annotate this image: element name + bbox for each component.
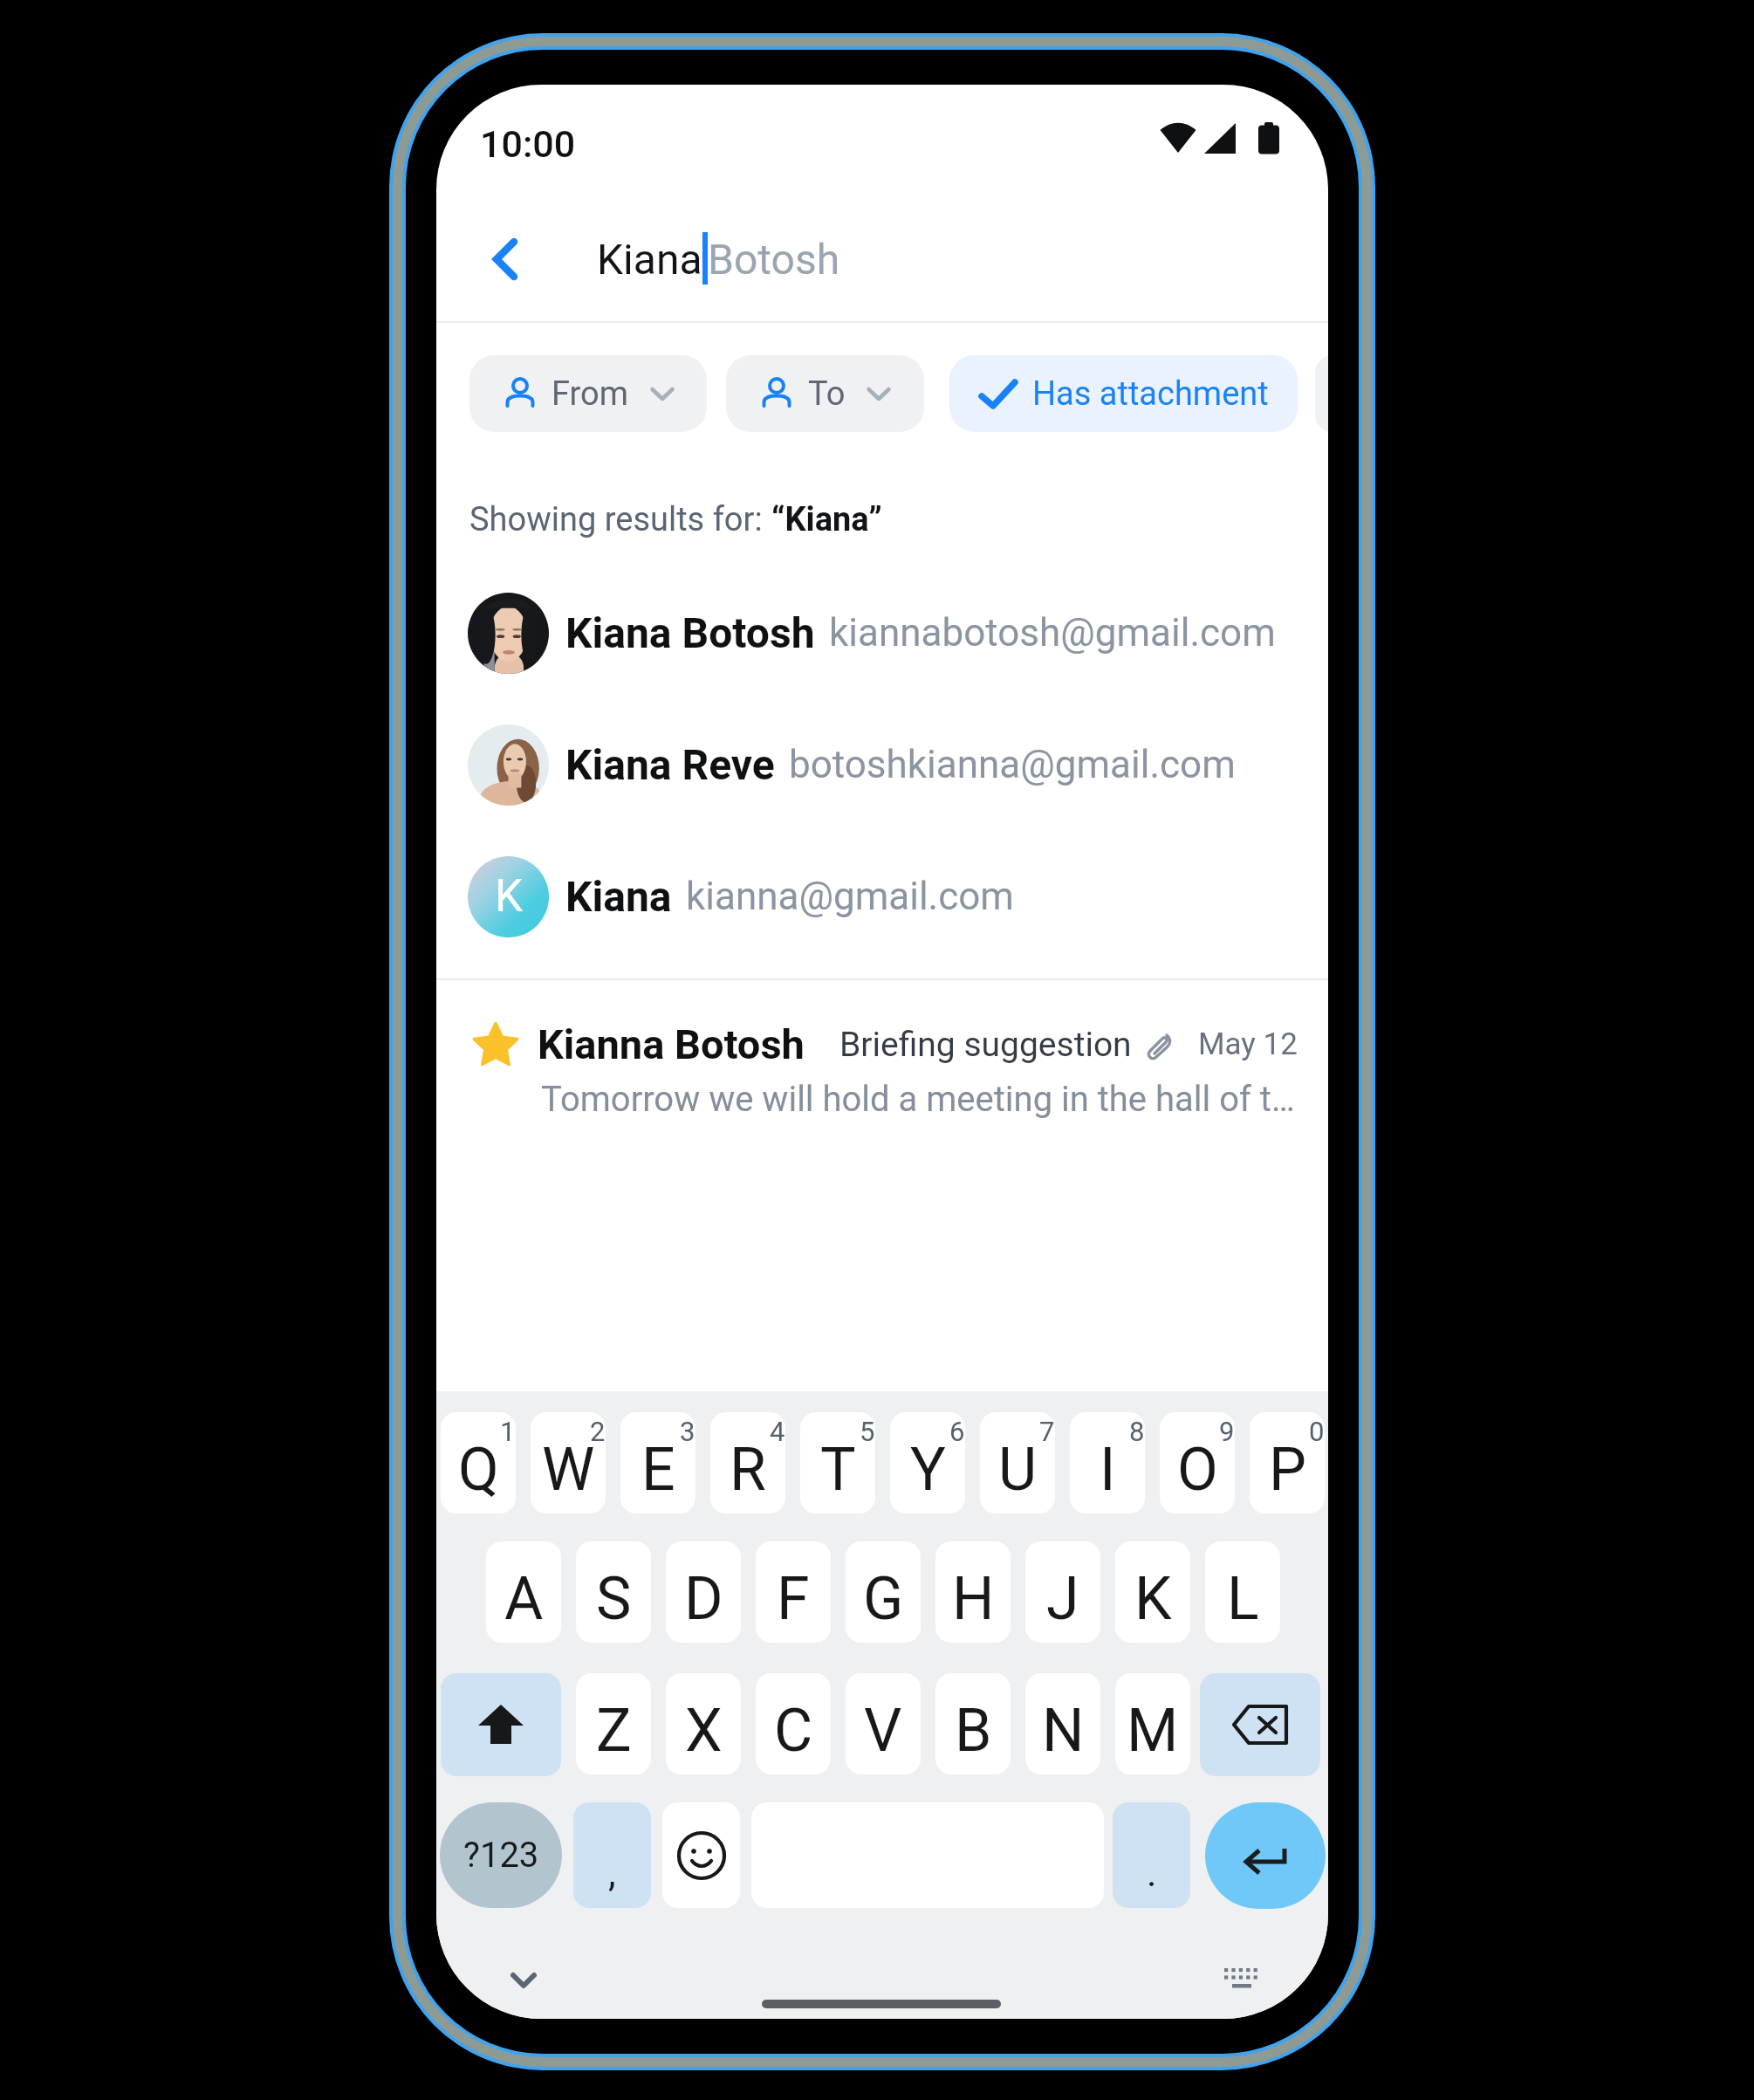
button[interactable]: Backspace	[1200, 1673, 1320, 1776]
button[interactable]: Kianna Botosh	[436, 1020, 1328, 1120]
button[interactable]: Z	[576, 1673, 651, 1774]
staticText: Y	[910, 1435, 946, 1505]
staticText: 4	[770, 1416, 785, 1447]
button[interactable]: I	[1070, 1412, 1145, 1513]
button[interactable]: Back	[469, 223, 542, 296]
staticText: S	[596, 1564, 632, 1634]
button[interactable]: Has attachment	[949, 355, 1298, 432]
staticText: 8	[1129, 1416, 1145, 1447]
staticText: 5	[860, 1416, 875, 1447]
button[interactable]: Emoji	[662, 1802, 740, 1908]
staticText: U	[998, 1435, 1038, 1505]
button[interactable]: B	[935, 1673, 1011, 1774]
staticText: C	[774, 1696, 813, 1766]
staticText: Botosh	[708, 235, 840, 284]
button[interactable]: From	[469, 355, 707, 432]
button[interactable]: Hide keyboard	[496, 1952, 552, 2008]
button[interactable]: ?123	[440, 1802, 562, 1908]
staticText: R	[730, 1435, 766, 1505]
staticText: Q	[458, 1435, 499, 1505]
button[interactable]: U	[980, 1412, 1055, 1513]
button[interactable]: Y	[890, 1412, 965, 1513]
staticText: M	[1127, 1696, 1179, 1766]
staticText: G	[863, 1564, 904, 1634]
staticText: P	[1269, 1435, 1306, 1505]
button[interactable]: O	[1160, 1412, 1235, 1513]
staticText: 3	[680, 1416, 695, 1447]
staticText: F	[777, 1564, 810, 1634]
staticText: B	[955, 1696, 992, 1766]
staticText: X	[685, 1696, 723, 1766]
staticText: Has attachment	[1032, 374, 1269, 414]
button[interactable]: L	[1205, 1541, 1280, 1643]
staticText: From	[552, 374, 629, 414]
button[interactable]: D	[666, 1541, 741, 1643]
staticText: T	[820, 1435, 856, 1505]
staticText: Kiana	[565, 872, 672, 921]
staticText: 1	[500, 1416, 516, 1447]
button[interactable]: .	[1113, 1802, 1190, 1908]
staticText: H	[952, 1564, 995, 1634]
staticText: J	[1046, 1564, 1079, 1634]
staticText: A	[504, 1564, 544, 1634]
button[interactable]: T	[800, 1412, 875, 1513]
staticText: O	[1177, 1435, 1218, 1505]
button[interactable]: M	[1115, 1673, 1190, 1774]
staticText: kiannabotosh@gmail.com	[829, 610, 1276, 655]
button[interactable]: Shift	[441, 1673, 561, 1776]
button[interactable]: To	[726, 355, 924, 432]
staticText: May 12	[1198, 1026, 1298, 1062]
staticText: Tomorrow we will hold a meeting in the h…	[541, 1079, 1295, 1120]
button[interactable]: X	[666, 1673, 741, 1774]
button[interactable]: V	[846, 1673, 921, 1774]
staticText: botoshkianna@gmail.com	[789, 742, 1236, 787]
button[interactable]: J	[1025, 1541, 1100, 1643]
staticText: D	[684, 1564, 723, 1634]
button[interactable]: H	[935, 1541, 1011, 1643]
staticText: ?123	[463, 1835, 539, 1876]
staticText: Kianna Botosh	[538, 1020, 805, 1068]
staticText: Showing results for:	[469, 500, 771, 539]
staticText: V	[864, 1696, 902, 1766]
staticText: W	[542, 1435, 595, 1505]
button[interactable]: A	[486, 1541, 561, 1643]
staticText: 0	[1309, 1416, 1325, 1447]
button[interactable]: P	[1250, 1412, 1325, 1513]
button[interactable]: N	[1025, 1673, 1100, 1774]
staticText: 10:00	[480, 122, 576, 166]
button[interactable]: Kiana Botosh	[436, 566, 1328, 699]
button[interactable]: Keyboard layout	[1211, 1948, 1272, 2009]
button[interactable]: K	[436, 830, 1328, 963]
button[interactable]: Kiana Reve	[436, 698, 1328, 831]
staticText: K	[1134, 1564, 1172, 1634]
staticText: ,	[608, 1850, 616, 1896]
button[interactable]: R	[710, 1412, 785, 1513]
staticText: Briefing suggestion	[839, 1025, 1132, 1065]
staticText: 9	[1219, 1416, 1235, 1447]
button[interactable]: Q	[441, 1412, 516, 1513]
staticText: E	[641, 1435, 675, 1505]
staticText: 6	[949, 1416, 965, 1447]
staticText: I	[1100, 1435, 1116, 1505]
button[interactable]: ,	[573, 1802, 651, 1908]
staticText: Z	[596, 1696, 632, 1766]
button[interactable]: W	[531, 1412, 606, 1513]
staticText: kianna@gmail.com	[686, 874, 1014, 919]
staticText: 2	[590, 1416, 606, 1447]
button[interactable]: S	[576, 1541, 651, 1643]
button[interactable]: C	[756, 1673, 831, 1774]
staticText: K	[495, 870, 523, 923]
button[interactable]: F	[756, 1541, 831, 1643]
button[interactable]: Enter	[1205, 1802, 1326, 1909]
staticText: Kiana Reve	[565, 740, 775, 789]
staticText: 7	[1039, 1416, 1055, 1447]
button[interactable]: E	[620, 1412, 695, 1513]
staticText: Kiana Botosh	[565, 608, 815, 657]
staticText: N	[1042, 1696, 1085, 1766]
button[interactable]: G	[846, 1541, 921, 1643]
button[interactable]: K	[1115, 1541, 1190, 1643]
staticText: To	[808, 374, 846, 414]
staticText: Kiana	[597, 235, 702, 284]
staticText: “Kiana”	[771, 500, 882, 539]
